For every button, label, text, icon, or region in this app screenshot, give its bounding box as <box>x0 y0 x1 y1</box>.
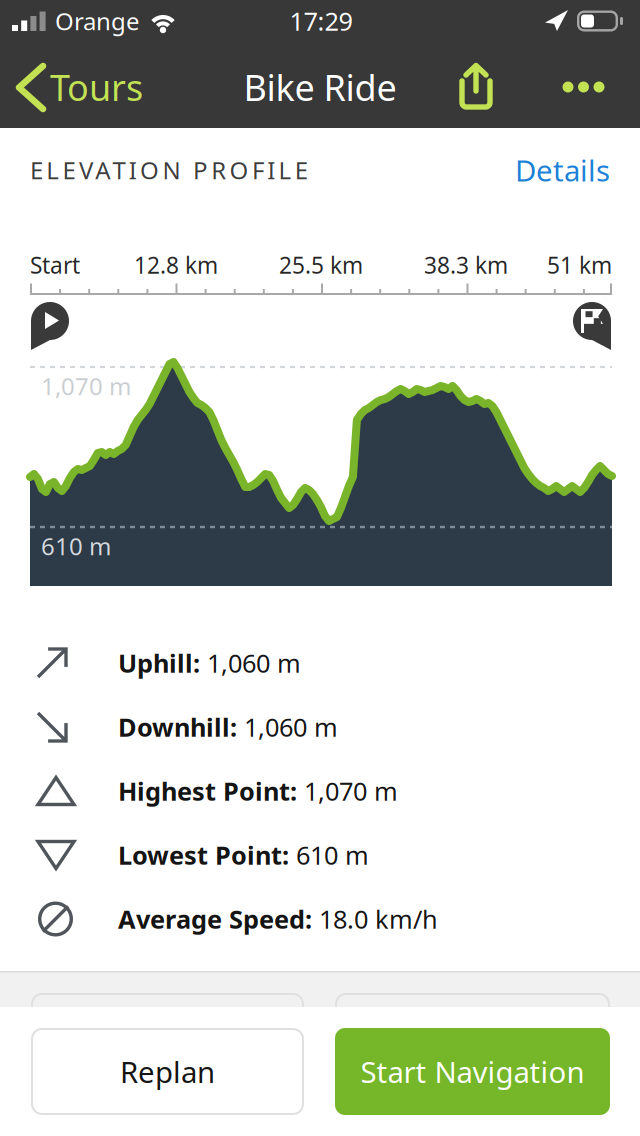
staticText: Details <box>515 150 610 190</box>
staticText: 610 m <box>41 530 111 562</box>
staticText: Start Navigation <box>360 1051 584 1091</box>
staticText: 610 m <box>289 838 369 872</box>
staticText: 25.5 km <box>279 250 363 280</box>
staticText: Start <box>30 250 80 280</box>
button[interactable]: Share <box>441 46 511 128</box>
button[interactable]: More options <box>548 46 618 128</box>
staticText: Highest Point: <box>118 774 297 808</box>
staticText: 18.0 km/h <box>312 902 438 936</box>
staticText: 1,060 m <box>237 710 338 744</box>
button[interactable]: Start Navigation <box>335 1028 610 1115</box>
staticText: 1,070 m <box>297 774 398 808</box>
staticText: 12.8 km <box>134 250 218 280</box>
staticText: Downhill: <box>118 710 237 744</box>
button[interactable]: Tours <box>4 46 164 128</box>
staticText: Bike Ride <box>243 62 396 111</box>
staticText: Lowest Point: <box>118 838 289 872</box>
staticText: 51 km <box>547 250 612 280</box>
staticText: 17:29 <box>289 4 352 38</box>
button[interactable]: Replan <box>31 1028 304 1115</box>
staticText: Average Speed: <box>118 902 312 936</box>
staticText: 1,070 m <box>41 370 131 402</box>
staticText: ELEVATION PROFILE <box>30 154 308 186</box>
staticText: 1,060 m <box>200 646 301 680</box>
staticText: Replan <box>120 1051 215 1091</box>
staticText: Tours <box>50 62 143 111</box>
staticText: Uphill: <box>118 646 200 680</box>
staticText: Orange <box>55 5 140 37</box>
button[interactable]: Details <box>460 148 610 192</box>
staticText: 38.3 km <box>424 250 508 280</box>
